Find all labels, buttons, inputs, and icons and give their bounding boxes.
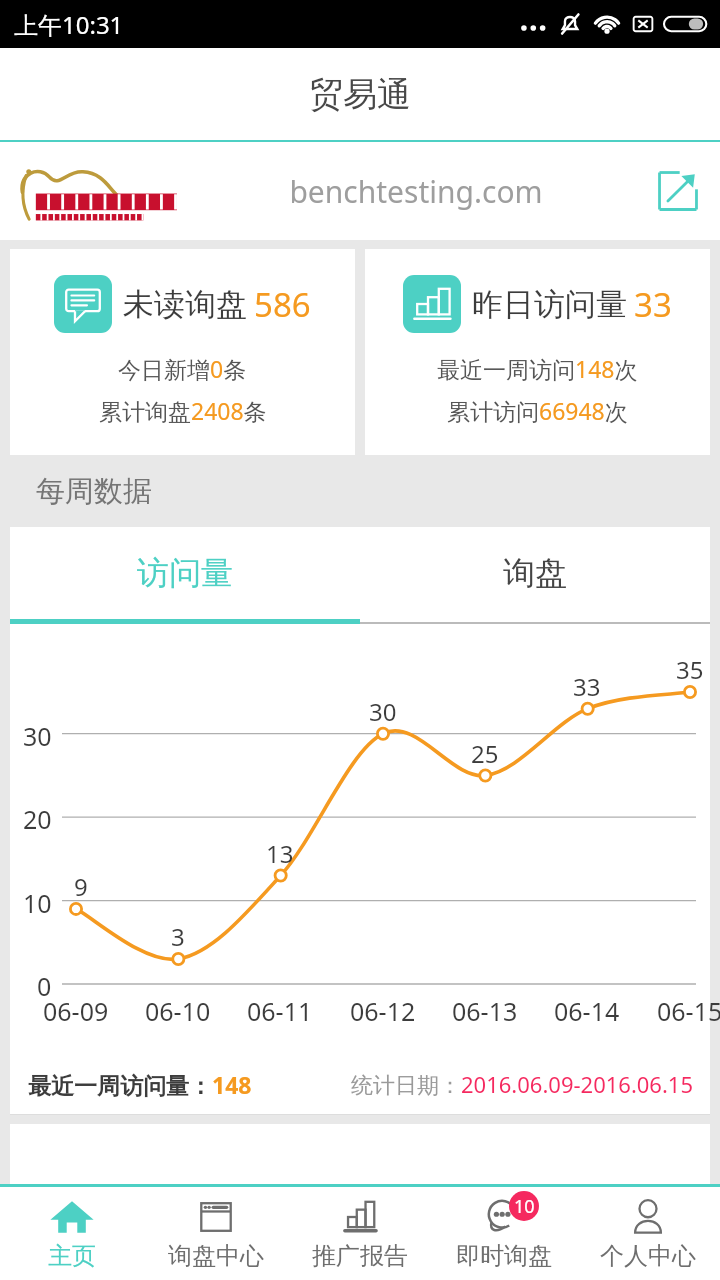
button[interactable]: Open website bbox=[650, 163, 706, 219]
staticText: 上午10:31 bbox=[14, 8, 124, 41]
staticText: 累计访问66948次 bbox=[447, 395, 628, 426]
staticText: 30 bbox=[369, 695, 397, 728]
staticText: 每周数据 bbox=[36, 473, 152, 510]
staticText: 30 bbox=[23, 719, 52, 753]
staticText: 即时询盘 bbox=[456, 1241, 552, 1271]
staticText: 最近一周访问量：148 bbox=[28, 1069, 252, 1100]
staticText: 昨日访问量 bbox=[472, 285, 627, 324]
staticText: 累计询盘2408条 bbox=[99, 395, 267, 426]
staticText: 06-13 bbox=[452, 994, 518, 1028]
staticText: 06-15 bbox=[657, 994, 720, 1028]
button[interactable]: 10 bbox=[432, 1187, 576, 1280]
staticText: 今日新增0条 bbox=[118, 353, 247, 384]
staticText: 贸易通 bbox=[309, 73, 411, 116]
staticText: 33 bbox=[573, 670, 601, 703]
staticText: 统计日期：2016.06.09-2016.06.15 bbox=[351, 1069, 694, 1099]
staticText: 06-14 bbox=[554, 994, 620, 1028]
button[interactable]: 询盘中心 bbox=[144, 1187, 288, 1280]
staticText: benchtesting.com bbox=[182, 171, 650, 212]
button[interactable]: 询盘 bbox=[360, 527, 710, 619]
staticText: 未读询盘 bbox=[123, 285, 247, 324]
staticText: 06-10 bbox=[145, 994, 211, 1028]
staticText: 0 bbox=[37, 969, 52, 1003]
button[interactable]: 未读询盘 bbox=[10, 249, 355, 455]
staticText: 询盘 bbox=[503, 553, 567, 593]
staticText: 3 bbox=[171, 920, 185, 953]
staticText: 06-11 bbox=[247, 994, 313, 1028]
staticText: 586 bbox=[254, 282, 311, 327]
button[interactable]: 个人中心 bbox=[576, 1187, 720, 1280]
button[interactable]: 昨日访问量 bbox=[365, 249, 710, 455]
staticText: 个人中心 bbox=[600, 1241, 696, 1271]
staticText: 推广报告 bbox=[312, 1241, 408, 1271]
staticText: 10 bbox=[23, 886, 52, 920]
staticText: 20 bbox=[23, 802, 52, 836]
staticText: 13 bbox=[266, 837, 294, 870]
staticText: 06-12 bbox=[350, 994, 416, 1028]
button[interactable]: benchtesting.com bbox=[0, 142, 720, 240]
staticText: 25 bbox=[471, 737, 499, 770]
staticText: 06-09 bbox=[43, 994, 109, 1028]
staticText: 35 bbox=[676, 653, 704, 686]
staticText: 10 bbox=[514, 1194, 535, 1219]
staticText: 访问量 bbox=[137, 553, 233, 593]
button[interactable]: 推广报告 bbox=[288, 1187, 432, 1280]
staticText: 最近一周访问148次 bbox=[437, 353, 638, 384]
staticText: 询盘中心 bbox=[168, 1241, 264, 1271]
staticText: 主页 bbox=[48, 1241, 96, 1271]
staticText: 33 bbox=[634, 282, 672, 327]
staticText: 9 bbox=[74, 870, 88, 903]
button[interactable]: 主页 bbox=[0, 1187, 144, 1280]
button[interactable]: 访问量 bbox=[10, 527, 360, 619]
